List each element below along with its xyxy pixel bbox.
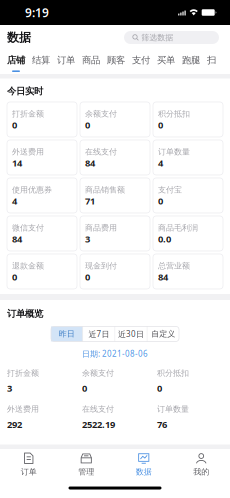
staticText: 订单 (57, 54, 75, 66)
staticText: 0 (12, 271, 17, 283)
button[interactable]: 筛选数据 (124, 31, 219, 44)
staticText: 9:19 (25, 4, 49, 20)
staticText: 4 (12, 195, 17, 207)
staticText: 支付宝 (158, 185, 182, 195)
staticText: 14 (12, 157, 22, 169)
button[interactable]: 我的 (172, 449, 230, 481)
button[interactable]: 近7日 (83, 326, 115, 341)
staticText: 84 (12, 233, 22, 245)
staticText: 退款金额 (12, 261, 44, 271)
staticText: 近7日 (88, 329, 109, 339)
staticText: 商品销售额 (85, 185, 125, 195)
staticText: 今日实时 (7, 85, 43, 97)
staticText: 顾客 (107, 54, 125, 66)
staticText: 店铺 (7, 54, 25, 66)
button[interactable]: 自定义 (148, 326, 179, 341)
staticText: 76 (157, 418, 167, 430)
staticText: 外送费用 (12, 147, 44, 157)
staticText: 支付 (132, 54, 150, 66)
staticText: 0 (85, 119, 90, 131)
button[interactable]: 扫 (207, 50, 216, 74)
staticText: 积分抵扣 (158, 109, 190, 119)
staticText: 跑腿 (182, 54, 200, 66)
staticText: 订单数量 (158, 147, 190, 157)
staticText: 商品费用 (85, 223, 117, 233)
staticText: 4 (158, 157, 163, 169)
staticText: 0.0 (158, 233, 171, 245)
staticText: 日期: 2021-08-06 (82, 348, 148, 359)
button[interactable]: 数据 (115, 449, 172, 481)
staticText: 商品 (82, 54, 100, 66)
staticText: 292 (7, 418, 22, 430)
staticText: 结算 (32, 54, 50, 66)
staticText: 0 (158, 195, 163, 207)
staticText: 我的 (193, 467, 209, 477)
staticText: 3 (7, 382, 12, 394)
staticText: 外送费用 (7, 404, 39, 414)
staticText: 余额支付 (85, 109, 117, 119)
staticText: 订单概览 (7, 308, 43, 319)
staticText: 现金到付 (85, 261, 117, 271)
staticText: 0 (85, 271, 90, 283)
button[interactable]: 支付 (132, 50, 150, 74)
staticText: 0 (158, 119, 163, 131)
staticText: 84 (158, 271, 168, 283)
staticText: 买单 (157, 54, 175, 66)
staticText: 2522.19 (82, 418, 115, 430)
staticText: 管理 (78, 467, 94, 477)
staticText: 3 (85, 233, 90, 245)
staticText: 0 (82, 382, 87, 394)
staticText: 微信支付 (12, 223, 44, 233)
button[interactable]: 店铺 (7, 50, 25, 74)
staticText: 打折金额 (12, 109, 44, 119)
button[interactable]: 管理 (57, 449, 115, 481)
staticText: 打折金额 (7, 368, 39, 378)
staticText: 近30日 (118, 329, 144, 339)
staticText: 数据 (7, 30, 31, 45)
staticText: 订单 (21, 467, 37, 477)
staticText: 数据 (136, 467, 152, 477)
staticText: 订单数量 (157, 404, 189, 414)
staticText: 自定义 (151, 329, 175, 339)
button[interactable]: 跑腿 (182, 50, 200, 74)
staticText: 筛选数据 (141, 33, 173, 42)
staticText: 71 (85, 195, 95, 207)
button[interactable]: 昨日 (51, 326, 82, 341)
button[interactable]: 买单 (157, 50, 175, 74)
staticText: 0 (12, 119, 17, 131)
staticText: 积分抵扣 (157, 368, 189, 378)
staticText: 商品毛利润 (158, 223, 198, 233)
button[interactable]: 顾客 (107, 50, 125, 74)
staticText: 0 (157, 382, 162, 394)
staticText: 扫 (207, 54, 216, 66)
staticText: 余额支付 (82, 368, 114, 378)
button[interactable]: 订单 (57, 50, 75, 74)
button[interactable]: 近30日 (115, 326, 147, 341)
staticText: 使用优惠券 (12, 185, 52, 195)
button[interactable]: 商品 (82, 50, 100, 74)
staticText: 总营业额 (158, 261, 190, 271)
button[interactable]: 结算 (32, 50, 50, 74)
staticText: 在线支付 (85, 147, 117, 157)
staticText: 84 (85, 157, 95, 169)
staticText: 昨日 (59, 329, 75, 339)
button[interactable]: 订单 (0, 449, 57, 481)
staticText: 在线支付 (82, 404, 114, 414)
